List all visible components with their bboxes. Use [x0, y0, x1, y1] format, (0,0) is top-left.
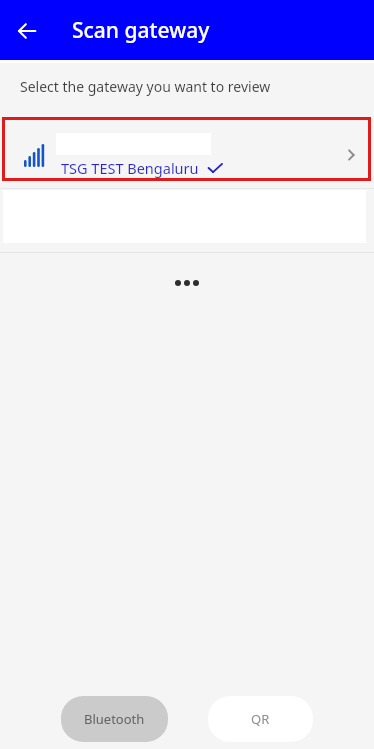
button[interactable]: Bluetooth: [61, 696, 168, 742]
staticText: Bluetooth: [84, 710, 145, 728]
staticText: Scan gateway: [72, 16, 210, 45]
button[interactable]: QR: [208, 696, 313, 742]
staticText: QR: [251, 710, 270, 728]
button[interactable]: TSG TEST Bengaluru: [2, 117, 371, 181]
staticText: Select the gateway you want to review: [20, 77, 271, 96]
staticText: TSG TEST Bengaluru: [61, 158, 199, 178]
button[interactable]: Back: [12, 16, 42, 46]
